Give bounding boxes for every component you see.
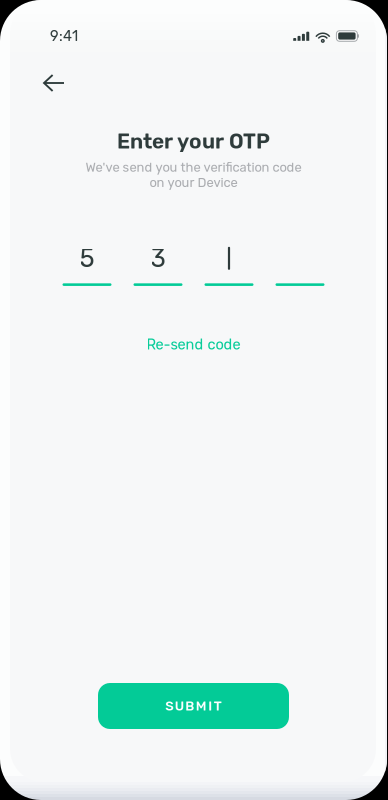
button[interactable]: Re-send code <box>134 331 252 358</box>
staticText: Enter your OTP <box>117 129 270 154</box>
staticText: We've send you the verification code <box>85 160 301 175</box>
staticText: 3 <box>150 243 165 273</box>
staticText: 9:41 <box>50 27 78 45</box>
staticText: Re-send code <box>146 336 240 353</box>
button[interactable]: SUBMIT <box>98 683 289 729</box>
button[interactable]: Back <box>0 63 87 103</box>
staticText: on your Device <box>149 175 237 190</box>
staticText: 5 <box>79 243 94 273</box>
staticText: SUBMIT <box>165 698 222 714</box>
